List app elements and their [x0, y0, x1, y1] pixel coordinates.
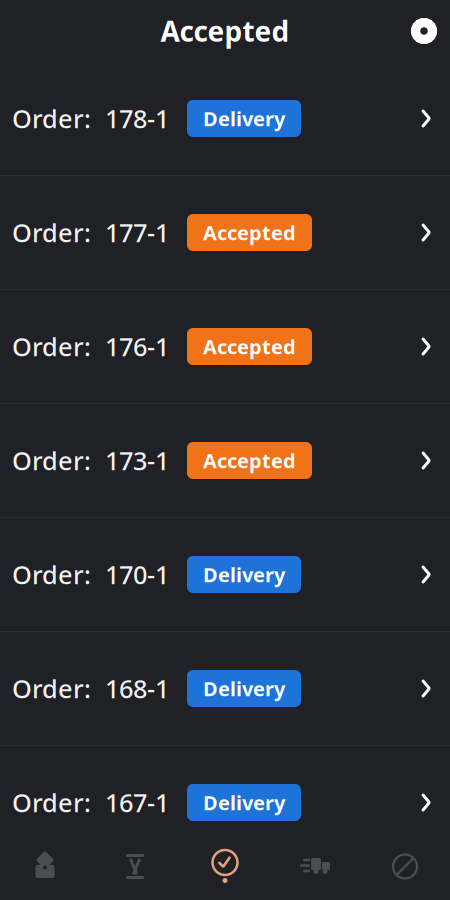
- button[interactable]: Order: 170-1: [0, 518, 450, 631]
- staticText: Accepted: [203, 219, 296, 246]
- button[interactable]: Delivery: [270, 833, 360, 900]
- button[interactable]: Order: 176-1: [0, 290, 450, 403]
- button[interactable]: Settings: [398, 5, 450, 57]
- staticText: Delivery: [203, 561, 285, 588]
- staticText: Order: 173-1: [12, 444, 169, 477]
- staticText: Order: 178-1: [12, 102, 169, 135]
- staticText: Delivery: [203, 675, 285, 702]
- staticText: Order: 167-1: [12, 786, 169, 819]
- button[interactable]: Home: [0, 833, 90, 900]
- button[interactable]: Pending: [90, 833, 180, 900]
- staticText: Order: 176-1: [12, 330, 169, 363]
- staticText: Delivery: [203, 105, 285, 132]
- staticText: Order: 170-1: [12, 558, 169, 591]
- staticText: Accepted: [203, 333, 296, 360]
- staticText: Accepted: [203, 447, 296, 474]
- button[interactable]: Order: 168-1: [0, 632, 450, 745]
- staticText: Accepted: [160, 12, 289, 50]
- button[interactable]: Order: 167-1: [0, 746, 450, 859]
- staticText: Order: 177-1: [12, 216, 169, 249]
- button[interactable]: Order: 178-1: [0, 62, 450, 175]
- button[interactable]: Accepted: [180, 833, 270, 900]
- button[interactable]: Order: 177-1: [0, 176, 450, 289]
- staticText: Delivery: [203, 789, 285, 816]
- staticText: Order: 168-1: [12, 672, 169, 705]
- button[interactable]: Order: 173-1: [0, 404, 450, 517]
- button[interactable]: Cancelled: [360, 833, 450, 900]
